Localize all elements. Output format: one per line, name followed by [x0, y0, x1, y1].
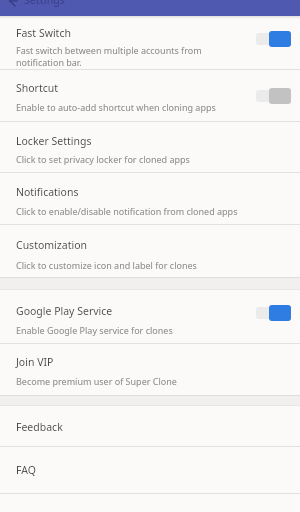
staticText: Enable Google Play service for clones	[16, 324, 173, 336]
button[interactable]: Fast Switch	[0, 16, 300, 70]
staticText: Shortcut	[16, 81, 59, 95]
button[interactable]: Feedback	[0, 406, 300, 447]
button[interactable]: Customization	[0, 225, 300, 277]
button[interactable]: Join VIP	[0, 344, 300, 395]
button[interactable]: Shortcut	[0, 70, 300, 122]
button[interactable]: Google Play Service	[0, 290, 300, 344]
button[interactable]: FAQ	[0, 447, 300, 494]
staticText: Click to customize icon and label for cl…	[16, 259, 197, 271]
staticText: Click to set privacy locker for cloned a…	[16, 153, 190, 165]
staticText: Enable to auto-add shortcut when cloning…	[16, 101, 216, 113]
button[interactable]	[256, 31, 291, 47]
button[interactable]: Settings	[0, 0, 300, 16]
staticText: Customization	[16, 238, 87, 252]
staticText: Locker Settings	[16, 134, 92, 148]
button[interactable]: Notifications	[0, 173, 300, 225]
button[interactable]	[256, 88, 291, 104]
staticText: Feedback	[16, 420, 63, 434]
staticText: FAQ	[16, 463, 36, 477]
staticText: Settings	[24, 0, 65, 7]
staticText: Become premium user of Super Clone	[16, 375, 177, 387]
staticText: Fast Switch	[16, 26, 71, 40]
staticText: Click to enable/disable notification fro…	[16, 205, 238, 217]
staticText: Notifications	[16, 185, 79, 199]
staticText: Join VIP	[16, 355, 54, 369]
button[interactable]	[256, 305, 291, 321]
staticText: Google Play Service	[16, 304, 113, 318]
button[interactable]: Locker Settings	[0, 122, 300, 173]
staticText: Fast switch between multiple accounts fr…	[16, 44, 202, 68]
